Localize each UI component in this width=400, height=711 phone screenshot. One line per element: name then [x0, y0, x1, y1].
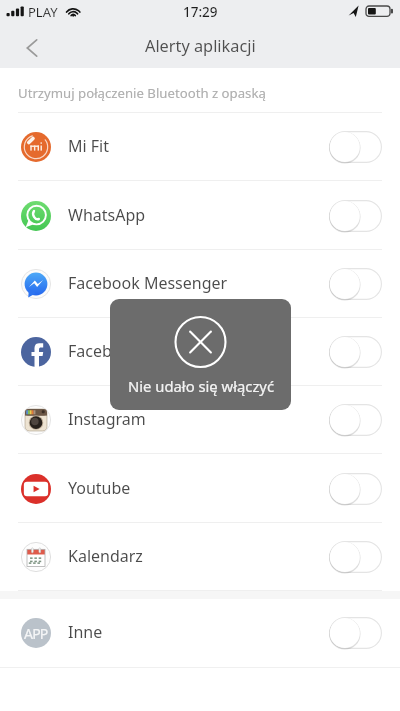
staticText: Inne — [68, 621, 103, 643]
button[interactable] — [329, 404, 382, 436]
staticText: Alerty aplikacji — [145, 35, 256, 57]
staticText: Youtube — [68, 477, 131, 499]
button[interactable] — [329, 336, 382, 368]
button[interactable]: Youtube — [0, 454, 400, 523]
button[interactable] — [329, 200, 382, 232]
staticText: Facebook — [68, 340, 140, 362]
staticText: Utrzymuj połączenie Bluetooth z opaską — [18, 84, 266, 102]
button[interactable]: Facebook Messenger — [0, 250, 400, 318]
staticText: Mi Fit — [68, 135, 110, 157]
staticText: Instagram — [68, 408, 146, 430]
button[interactable] — [329, 617, 382, 649]
staticText: 17:29 — [183, 3, 218, 21]
button[interactable]: Facebook — [0, 318, 400, 386]
button[interactable] — [329, 473, 382, 505]
button[interactable]: Back — [9, 28, 55, 68]
button[interactable]: Kalendarz — [0, 523, 400, 591]
button[interactable]: Mi Fit — [0, 113, 400, 181]
button[interactable] — [329, 131, 382, 163]
staticText: WhatsApp — [68, 204, 146, 226]
button[interactable] — [329, 268, 382, 300]
staticText: Nie udało się włączyć — [128, 376, 274, 396]
button[interactable]: WhatsApp — [0, 181, 400, 250]
staticText: APP — [24, 624, 48, 643]
staticText: Facebook Messenger — [68, 272, 228, 294]
button[interactable] — [329, 541, 382, 573]
button[interactable]: APP — [0, 599, 400, 667]
button[interactable]: Instagram — [0, 386, 400, 454]
staticText: Kalendarz — [68, 545, 143, 567]
staticText: PLAY — [28, 3, 58, 21]
